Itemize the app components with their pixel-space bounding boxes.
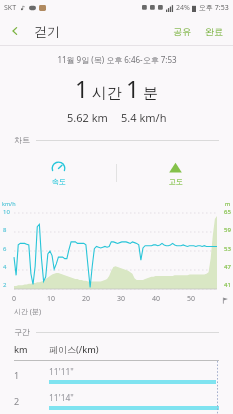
staticText: 속도 — [52, 177, 66, 186]
staticText: 고도 — [169, 177, 183, 186]
staticText: 1 — [126, 73, 140, 104]
staticText: 1 — [14, 369, 49, 381]
staticText: 47 — [224, 263, 231, 271]
staticText: 페이스(/km) — [49, 343, 99, 355]
staticText: km/h — [2, 200, 16, 207]
staticText: 오후 7:53 — [199, 3, 229, 13]
staticText: 차트 — [14, 135, 30, 145]
staticText: 5.4 km/h — [121, 110, 167, 125]
staticText: 0 — [12, 294, 17, 304]
button[interactable]: 고도 — [164, 156, 187, 190]
button[interactable]: Back — [0, 16, 30, 46]
staticText: 분 — [143, 84, 158, 103]
staticText: m — [225, 200, 231, 207]
staticText: 구간 — [14, 327, 30, 337]
staticText: 24% — [176, 3, 190, 13]
staticText: 완료 — [205, 26, 223, 37]
staticText: 6 — [3, 245, 7, 253]
staticText: 20 — [82, 294, 91, 304]
button[interactable]: 2 — [0, 388, 233, 414]
button[interactable]: 완료 — [199, 20, 233, 43]
staticText: 41 — [224, 281, 231, 289]
staticText: 4 — [3, 263, 7, 271]
staticText: 5.62 km — [67, 110, 108, 125]
staticText: SKT — [4, 3, 17, 13]
staticText: 걷기 — [34, 23, 60, 39]
staticText: 시간 (분) — [14, 307, 42, 317]
staticText: 공유 — [173, 26, 191, 37]
staticText: 11월 9일 (목) 오후 6:46-오후 7:53 — [57, 54, 177, 65]
staticText: 53 — [224, 245, 231, 253]
staticText: 8 — [3, 226, 7, 234]
button[interactable]: 공유 — [165, 20, 199, 43]
staticText: 2 — [14, 395, 49, 407]
staticText: 11'14" — [49, 392, 74, 404]
staticText: 50 — [187, 294, 196, 304]
button[interactable]: 1 — [0, 361, 233, 388]
button[interactable]: 속도 — [47, 156, 70, 190]
staticText: 10 — [47, 294, 56, 304]
staticText: 시간 — [92, 84, 122, 103]
staticText: 65 — [224, 208, 231, 216]
staticText: 59 — [224, 226, 231, 234]
staticText: 30 — [117, 294, 126, 304]
staticText: 11'11" — [49, 366, 74, 378]
staticText: 2 — [3, 281, 7, 289]
staticText: 1 — [75, 73, 89, 104]
staticText: 10 — [3, 208, 10, 216]
staticText: km — [14, 343, 49, 355]
staticText: 40 — [152, 294, 161, 304]
